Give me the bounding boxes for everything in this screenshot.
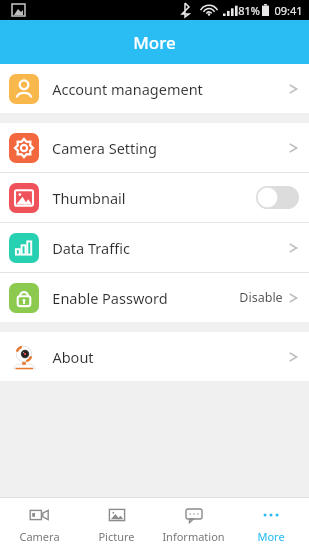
- button[interactable]: Camera: [0, 498, 78, 550]
- button[interactable]: Enable Password: [0, 273, 309, 322]
- staticText: More: [133, 31, 176, 54]
- staticText: About: [52, 347, 94, 367]
- button[interactable]: Account management: [0, 64, 309, 113]
- button[interactable]: Camera Setting: [0, 123, 309, 172]
- button[interactable]: Data Traffic: [0, 223, 309, 272]
- button[interactable]: More: [232, 498, 309, 550]
- staticText: Disable: [239, 289, 283, 306]
- staticText: Data Traffic: [52, 238, 130, 258]
- button[interactable]: Thumbnail: [0, 173, 309, 222]
- button[interactable]: About: [0, 332, 309, 381]
- button[interactable]: Information: [155, 498, 232, 550]
- staticText: 09:41: [274, 3, 303, 18]
- staticText: More: [257, 529, 285, 544]
- staticText: Picture: [98, 529, 135, 544]
- staticText: Thumbnail: [52, 188, 126, 208]
- staticText: Account management: [52, 79, 203, 99]
- staticText: Camera Setting: [52, 138, 157, 158]
- button[interactable]: Picture: [78, 498, 155, 550]
- staticText: Enable Password: [52, 288, 168, 308]
- staticText: Camera: [19, 529, 60, 544]
- staticText: Information: [162, 529, 225, 544]
- staticText: 81%: [238, 3, 260, 18]
